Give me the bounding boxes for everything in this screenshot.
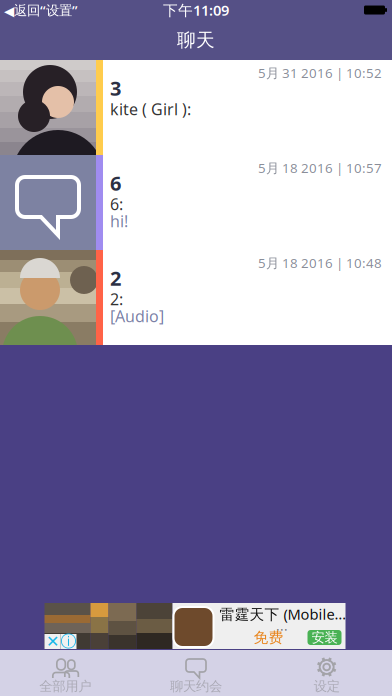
- staticText: 6:: [110, 193, 123, 215]
- button[interactable]: 5月 18 2016 | 10:48: [0, 250, 392, 345]
- staticText: 5月 31 2016 | 10:52: [258, 64, 382, 82]
- button[interactable]: 设定: [261, 650, 392, 696]
- staticText: 5月 18 2016 | 10:57: [258, 159, 382, 177]
- staticText: ◀返回“设置”: [4, 1, 78, 19]
- button[interactable]: 5月 18 2016 | 10:57: [0, 155, 392, 250]
- staticText: 2:: [110, 288, 123, 310]
- staticText: 6: [110, 170, 121, 196]
- staticText: 2: [110, 265, 121, 291]
- staticText: 设定: [314, 678, 340, 694]
- staticText: 聊天: [177, 28, 215, 51]
- staticText: 5月 18 2016 | 10:48: [258, 254, 382, 272]
- staticText: 全部用户: [39, 678, 91, 694]
- button[interactable]: 5月 31 2016 | 10:52: [0, 60, 392, 155]
- staticText: 雷霆天下 (Mobile Strike: [219, 604, 349, 624]
- staticText: 免费: [253, 628, 283, 646]
- staticText: hi!: [110, 210, 128, 232]
- staticText: 3: [110, 75, 121, 101]
- button[interactable]: 聊天约会: [131, 650, 261, 696]
- staticText: ...: [276, 617, 288, 634]
- staticText: 聊天约会: [170, 678, 222, 694]
- staticText: [Audio]: [110, 305, 164, 327]
- button[interactable]: 全部用户: [0, 650, 131, 696]
- staticText: ⓘ: [60, 632, 76, 651]
- staticText: ✕: [46, 632, 59, 651]
- button[interactable]: Advertisement: [44, 603, 347, 649]
- staticText: kite ( Girl ):: [110, 98, 191, 120]
- staticText: 下午11:09: [163, 0, 229, 20]
- staticText: 安装: [311, 629, 337, 646]
